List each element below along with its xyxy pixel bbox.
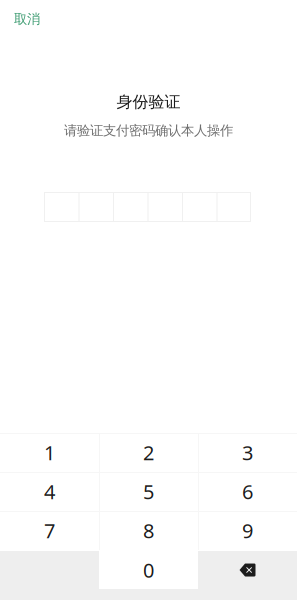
button[interactable]: 0: [99, 551, 198, 589]
button[interactable]: 6: [198, 472, 297, 511]
staticText: 0: [143, 557, 154, 583]
staticText: 请验证支付密码确认本人操作: [64, 122, 233, 139]
button[interactable]: 2: [99, 433, 198, 472]
button[interactable]: 取消: [0, 2, 54, 36]
staticText: 3: [242, 439, 253, 466]
button[interactable]: 3: [198, 433, 297, 472]
button[interactable]: 9: [198, 511, 297, 550]
staticText: 取消: [14, 11, 40, 27]
button[interactable]: Delete: [198, 551, 297, 589]
staticText: 6: [242, 478, 253, 505]
staticText: 4: [44, 478, 55, 505]
button[interactable]: 8: [99, 511, 198, 550]
button[interactable]: 4: [0, 472, 99, 511]
button[interactable]: 1: [0, 433, 99, 472]
button[interactable]: 7: [0, 511, 99, 550]
button[interactable]: Payment password: [44, 192, 251, 222]
staticText: 7: [44, 517, 55, 544]
button[interactable]: 5: [99, 472, 198, 511]
staticText: 1: [44, 439, 55, 466]
staticText: 身份验证: [116, 92, 180, 112]
staticText: 2: [143, 439, 154, 466]
staticText: 5: [143, 478, 154, 505]
staticText: 9: [242, 517, 253, 544]
staticText: 8: [143, 517, 154, 544]
